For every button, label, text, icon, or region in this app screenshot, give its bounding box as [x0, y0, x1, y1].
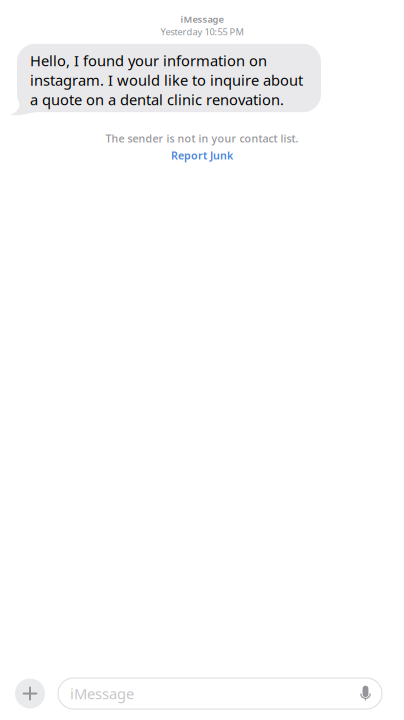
button[interactable]: iMessage	[58, 678, 353, 709]
staticText: iMessage	[180, 13, 223, 25]
button[interactable]: Add attachment	[15, 678, 45, 708]
staticText: The sender is not in your contact list.	[105, 131, 298, 145]
button[interactable]: Dictate	[353, 678, 382, 709]
staticText: iMessage	[70, 684, 134, 703]
staticText: Yesterday 10:55 PM	[160, 25, 243, 38]
button[interactable]: Report Junk	[171, 148, 233, 163]
staticText: Hello, I found your information on insta…	[30, 51, 303, 109]
button[interactable]: Hello, I found your information on insta…	[17, 44, 321, 112]
staticText: Report Junk	[171, 148, 233, 163]
